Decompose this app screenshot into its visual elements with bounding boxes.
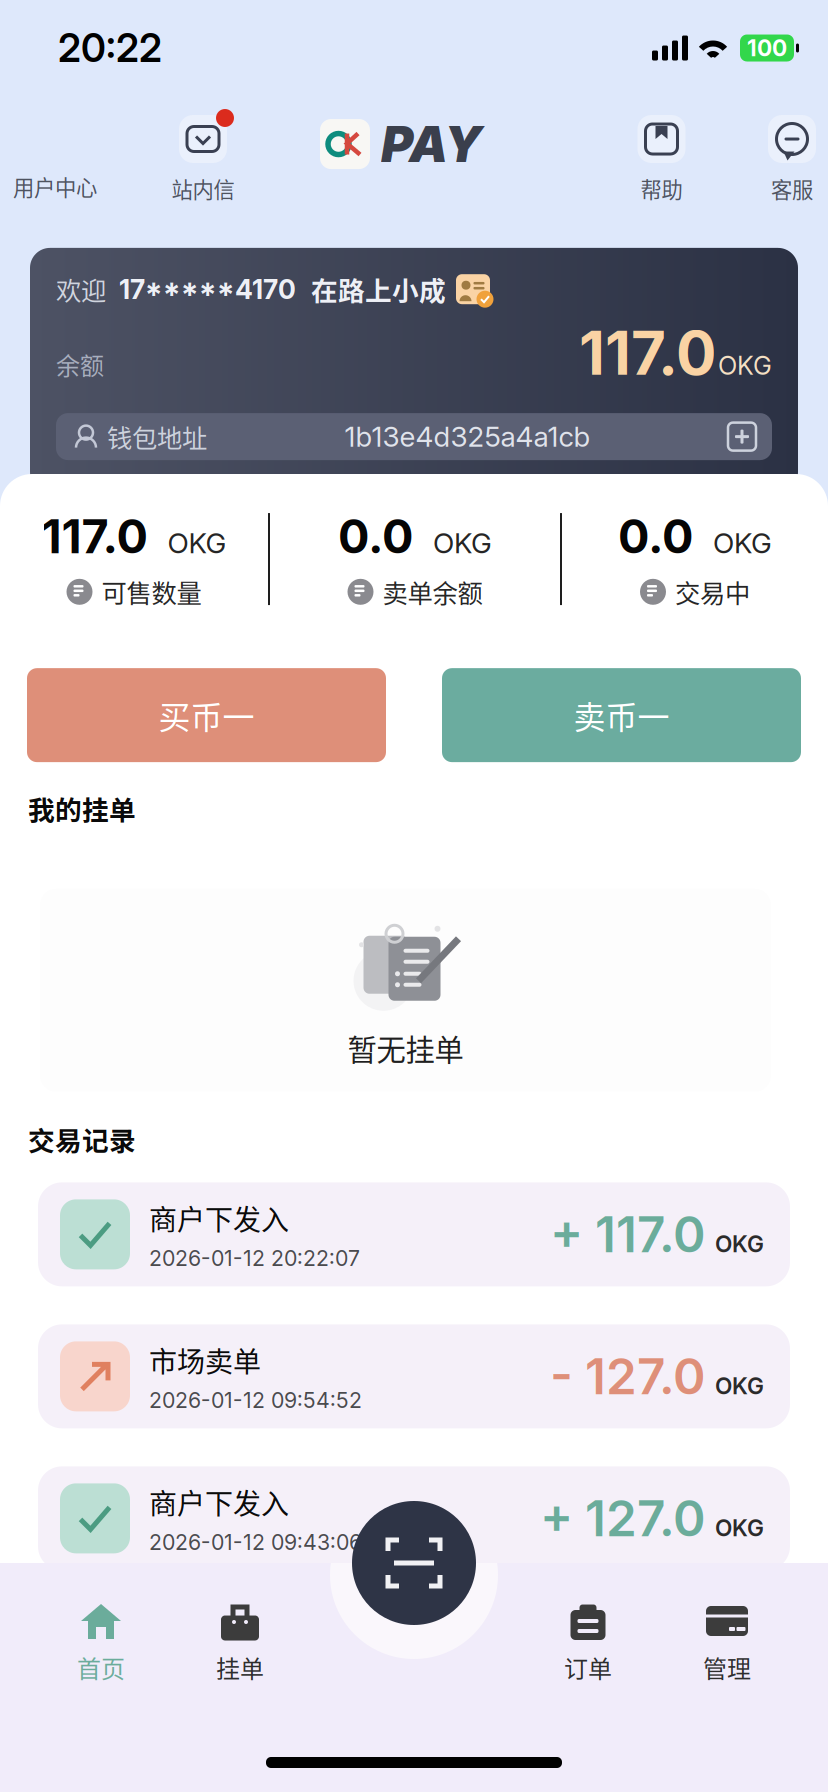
staticText: 首页 [77,1650,125,1685]
staticText: 商户下发入 [149,1198,289,1238]
staticText: 客服 [771,173,813,204]
staticText: 我的挂单 [28,789,136,828]
staticText: 用户中心 [13,171,97,202]
staticText: 17*****4170 [119,273,296,305]
staticText: 卖单余额 [382,573,482,610]
staticText: 站内信 [171,173,234,204]
staticText: 市场卖单 [149,1340,261,1380]
staticText: 可售数量 [101,573,201,610]
staticText: - 127.0 [550,1346,706,1406]
button[interactable]: 管理 [626,1601,828,1685]
staticText: 100 [747,34,787,62]
button[interactable]: 商户下发入 [38,1182,790,1286]
button[interactable]: 站内信 [171,96,234,204]
staticText: 2026-01-12 09:54:52 [149,1387,362,1413]
staticText: OKG [718,350,772,381]
staticText: 2026-01-12 09:43:06 [149,1529,362,1555]
button[interactable]: 挂单 [202,1601,278,1685]
staticText: OKG [713,526,772,560]
staticText: 管理 [703,1650,751,1685]
button[interactable]: 钱包地址 [56,413,772,460]
staticText: OKG [167,526,226,560]
staticText: OKG [715,1372,764,1400]
staticText: 117.0 [579,316,716,389]
staticText: 商户下发入 [149,1482,289,1522]
staticText: 0.0 [338,508,413,564]
button[interactable]: 用户中心 [13,171,97,204]
button[interactable]: 订单 [550,1601,626,1685]
staticText: OKG [715,1514,764,1542]
staticText: 20:22 [58,25,162,71]
button[interactable]: 买币一 [27,668,386,762]
staticText: 交易记录 [28,1120,136,1158]
staticText: 暂无挂单 [347,1027,463,1069]
staticText: 1b13e4d325a4a1cb [344,420,590,454]
staticText: PAY [381,114,482,174]
button[interactable]: 扫一扫 [352,1501,476,1625]
button[interactable]: 市场卖单 [38,1324,790,1428]
staticText: 欢迎 [56,271,106,308]
button[interactable]: 客服 [761,96,823,204]
button[interactable]: 卖币一 [442,668,801,762]
staticText: 余额 [56,347,104,382]
button[interactable]: 首页 [0,1601,202,1685]
staticText: 买币一 [158,692,254,738]
staticText: 挂单 [216,1650,264,1685]
staticText: 2026-01-12 20:22:07 [149,1245,360,1271]
staticText: OKG [433,526,492,560]
staticText: 卖币一 [573,692,669,738]
staticText: 帮助 [640,173,682,204]
staticText: 钱包地址 [107,418,207,455]
button[interactable]: 帮助 [630,96,692,204]
button[interactable]: 商户下发入 [38,1466,790,1570]
staticText: + 127.0 [540,1488,706,1548]
staticText: 117.0 [41,508,147,564]
staticText: 交易中 [675,573,750,610]
staticText: 在路上小成 [311,270,446,308]
staticText: 订单 [564,1650,612,1685]
staticText: OKG [715,1230,764,1258]
staticText: + 117.0 [550,1204,706,1264]
staticText: 0.0 [618,508,693,564]
